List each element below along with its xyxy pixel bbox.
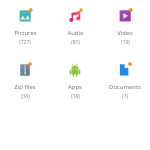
staticText: (34): [21, 93, 30, 100]
staticText: (18): [71, 93, 80, 100]
staticText: (19): [121, 39, 130, 46]
button[interactable]: Pictures: [0, 6, 50, 46]
button[interactable]: Documents: [100, 60, 150, 100]
staticText: Documents: [109, 83, 141, 91]
staticText: (7): [122, 93, 128, 100]
button[interactable]: Zip files: [0, 60, 50, 100]
staticText: (727): [19, 39, 31, 46]
button[interactable]: Video: [100, 6, 150, 46]
staticText: (81): [71, 39, 80, 46]
button[interactable]: Apps: [50, 60, 100, 100]
button[interactable]: Audio: [50, 6, 100, 46]
staticText: Audio: [67, 29, 84, 37]
staticText: Pictures: [14, 29, 37, 37]
staticText: Apps: [68, 83, 82, 91]
staticText: Zip files: [14, 83, 36, 91]
staticText: Video: [117, 29, 133, 37]
